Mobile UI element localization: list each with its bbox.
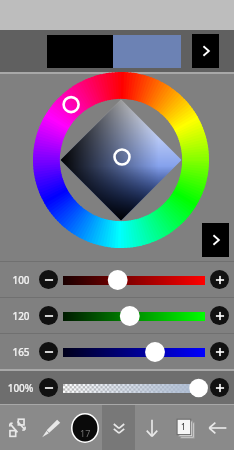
button[interactable]: Increase [210,306,229,325]
staticText: 100% [4,381,37,395]
button[interactable]: Decrease [39,342,58,361]
staticText: 100 [6,273,36,287]
button[interactable]: Layers [168,405,201,450]
staticText: 120 [6,309,36,323]
button[interactable]: Brush [34,405,68,450]
button[interactable]: Increase [210,378,229,397]
button[interactable]: 100% [0,371,234,404]
button[interactable]: Increase [210,270,229,289]
button[interactable] [0,74,234,261]
button[interactable]: 120 [0,298,234,333]
staticText: 1 [181,421,186,432]
button[interactable]: 100 [0,262,234,297]
button[interactable]: Decrease [39,306,58,325]
button[interactable]: Expand [202,223,229,257]
button[interactable]: Download [135,405,168,450]
button[interactable]: Back [201,405,234,450]
staticText: 17 [80,427,91,439]
staticText: 165 [6,345,36,359]
button[interactable]: Decrease [39,270,58,289]
button[interactable]: 165 [0,334,234,369]
button[interactable]: Expand [192,34,219,68]
button[interactable]: Collapse [102,405,135,450]
button[interactable]: Decrease [39,378,58,397]
button[interactable]: Brush size [68,405,102,450]
button[interactable]: Transform [0,405,34,450]
button[interactable]: Increase [210,342,229,361]
